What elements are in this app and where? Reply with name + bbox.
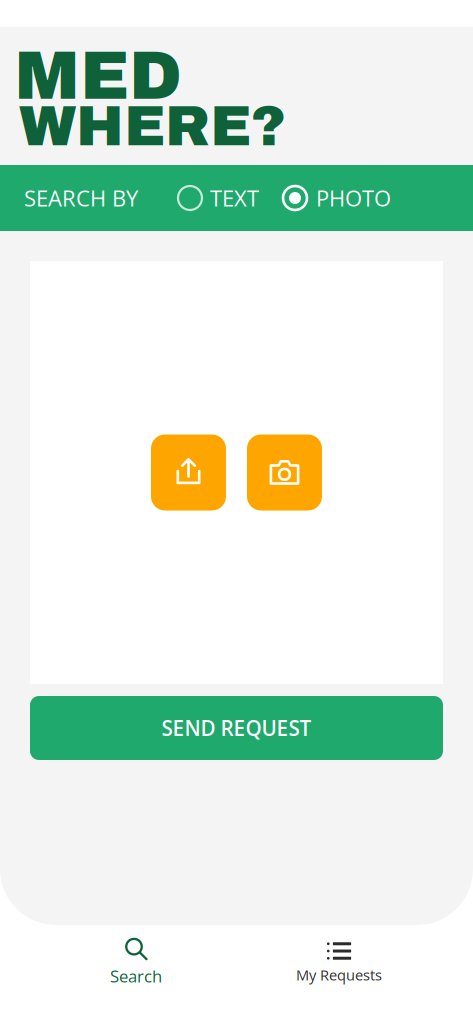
button[interactable]: Search [30, 917, 242, 1007]
button[interactable]: My Requests [233, 919, 445, 1009]
staticText: Search [110, 965, 162, 987]
staticText: SEARCH BY [24, 183, 138, 213]
staticText: WHERE? [19, 95, 286, 157]
button[interactable]: TEXT [178, 174, 259, 222]
button[interactable]: PHOTO [283, 174, 391, 222]
button[interactable]: SEND REQUEST [30, 696, 443, 760]
button[interactable]: Take photo [247, 434, 322, 510]
button[interactable]: Upload photo [151, 434, 226, 510]
staticText: My Requests [296, 965, 382, 985]
staticText: SEND REQUEST [161, 714, 311, 742]
staticText: PHOTO [316, 183, 391, 213]
staticText: TEXT [210, 183, 259, 213]
staticText: MED [14, 39, 182, 113]
